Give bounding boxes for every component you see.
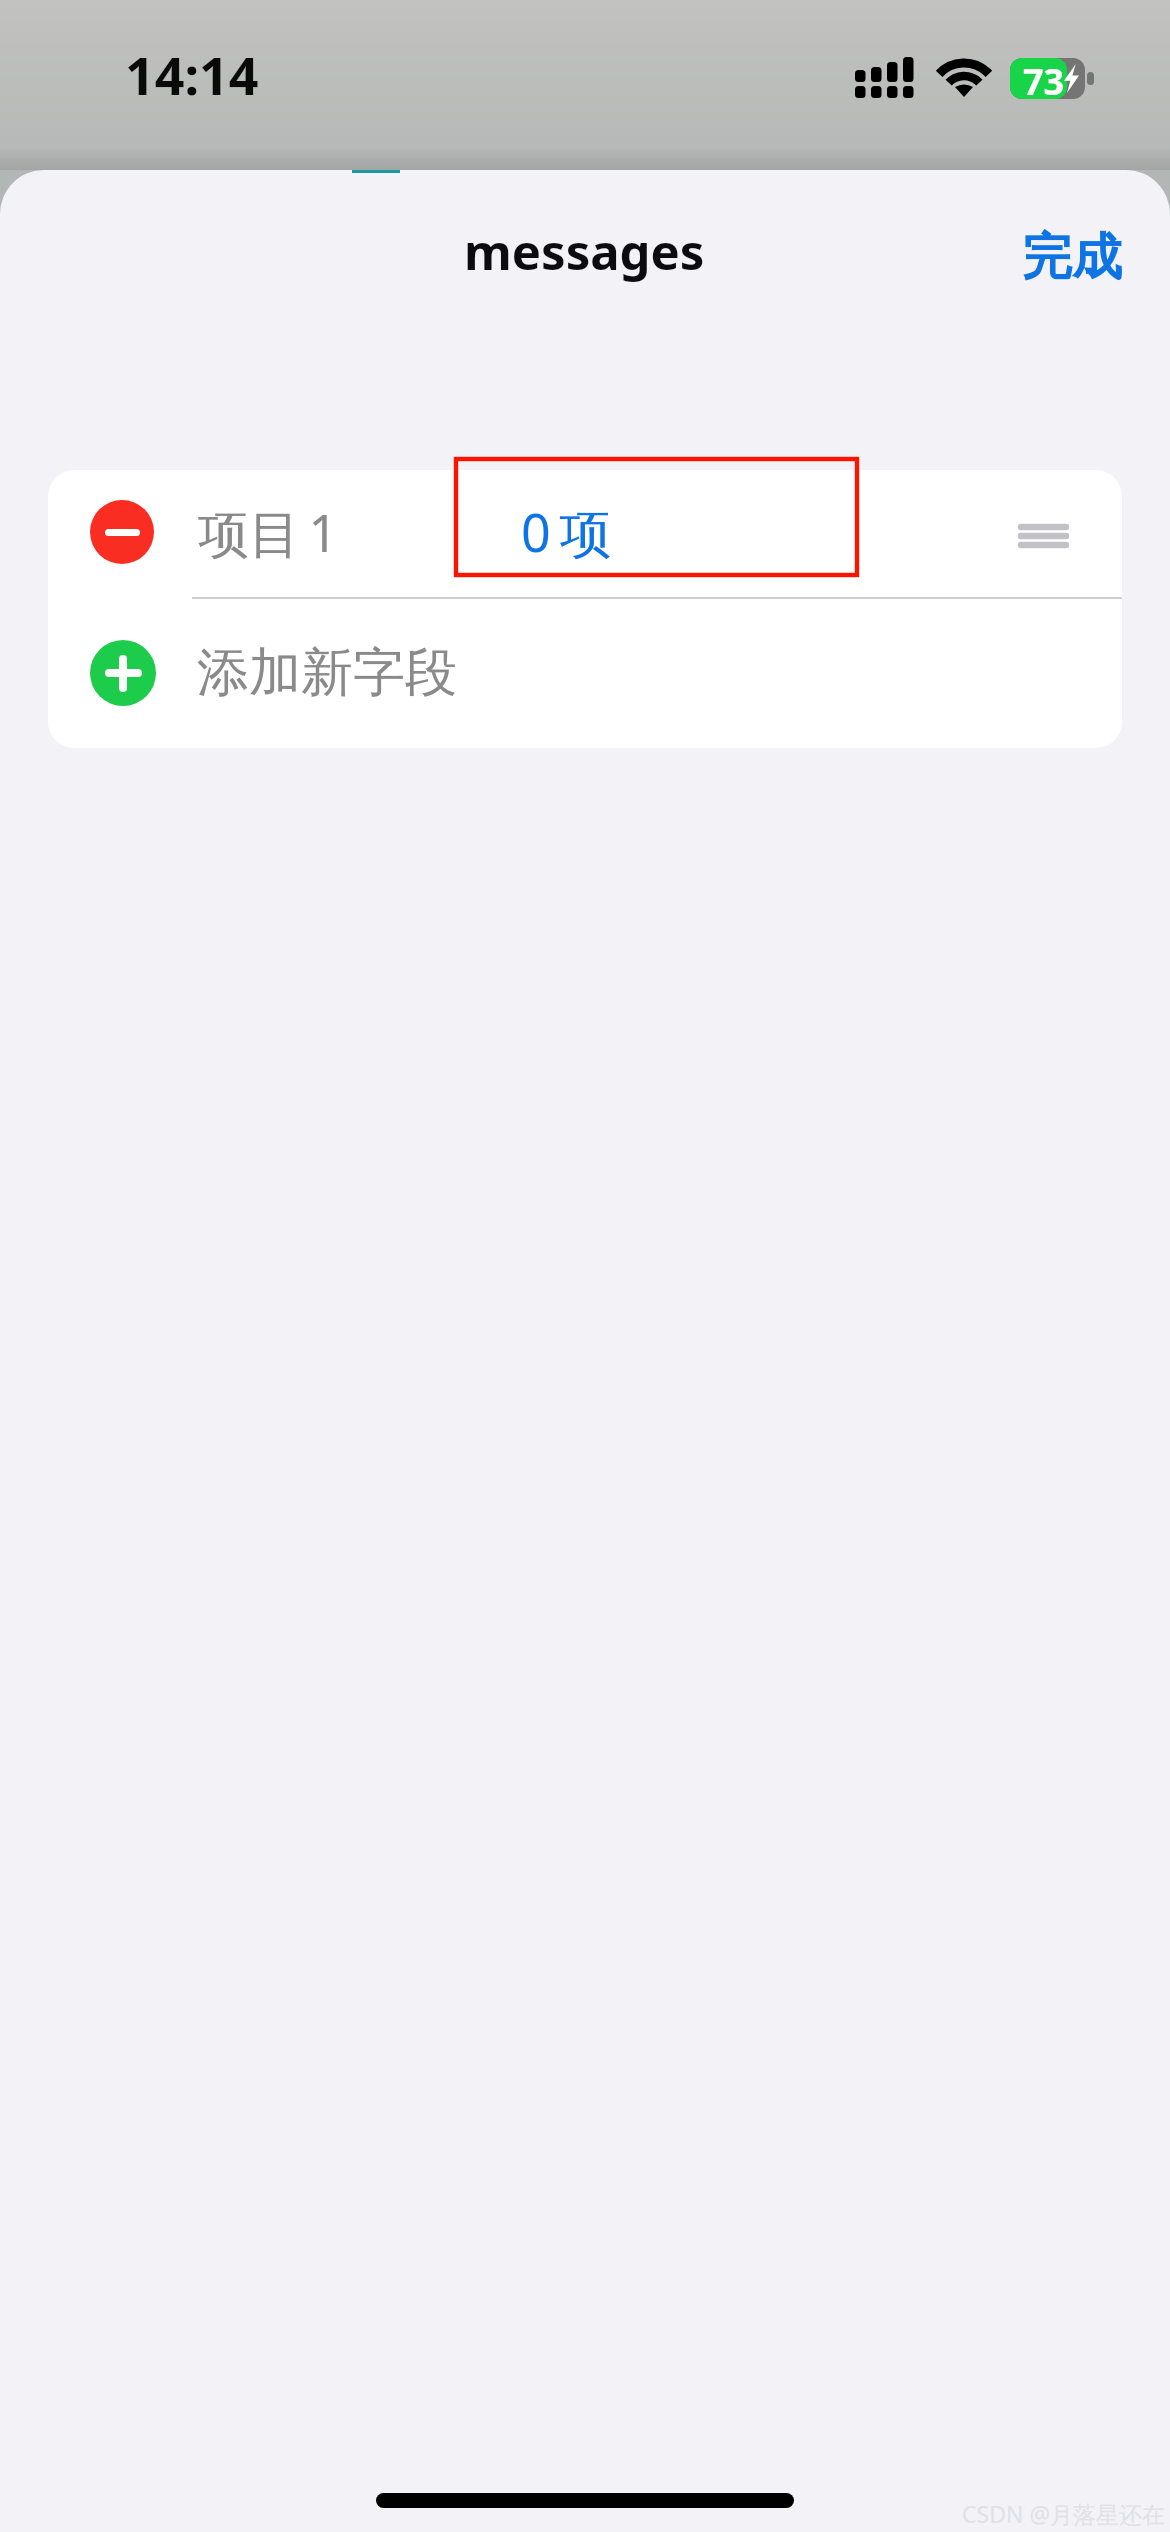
staticText: 14:14 [125,39,259,110]
staticText: 项目 1 [198,497,338,567]
staticText: 73 [1023,57,1065,98]
button[interactable]: Delete field [48,470,1122,594]
staticText: messages [464,218,705,285]
button[interactable]: Reorder [981,510,1105,562]
staticText: 完成 [1022,226,1122,289]
staticText: 0 项 [521,496,612,567]
staticText: CSDN @月落星还在 [962,2498,1166,2529]
button[interactable]: Add new field [48,597,1122,748]
button[interactable]: Add new field [90,640,156,706]
staticText: 添加新字段 [197,640,457,706]
button[interactable]: Delete field [90,500,154,564]
button[interactable]: 完成 [1000,214,1144,301]
